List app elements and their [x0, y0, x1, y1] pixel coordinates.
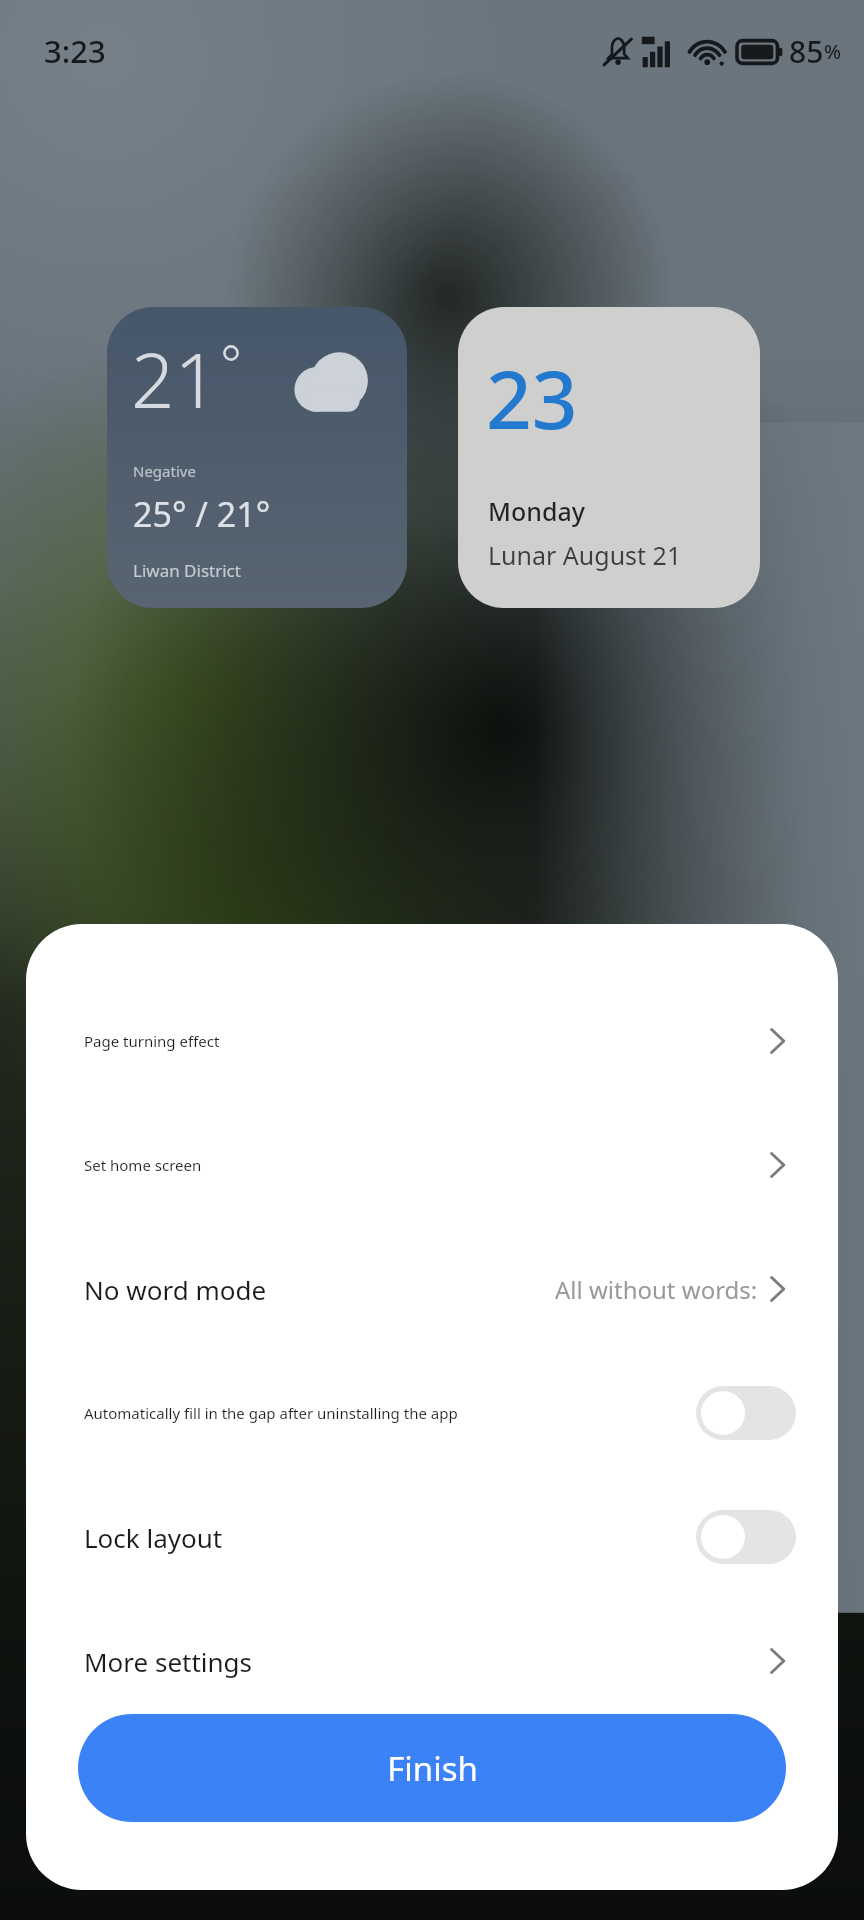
- button[interactable]: 23: [458, 307, 760, 608]
- staticText: 25° / 21°: [133, 491, 271, 537]
- staticText: 23: [486, 343, 578, 452]
- staticText: Liwan District: [133, 559, 241, 582]
- staticText: All without words:: [555, 1273, 758, 1306]
- staticText: 3:23: [44, 30, 106, 72]
- button[interactable]: More settings: [26, 1618, 838, 1704]
- button[interactable]: No word mode: [26, 1246, 838, 1332]
- staticText: Set home screen: [84, 1155, 202, 1175]
- staticText: Monday: [488, 494, 585, 528]
- staticText: 21: [131, 327, 218, 431]
- staticText: Page turning effect: [84, 1031, 220, 1051]
- staticText: More settings: [84, 1644, 253, 1679]
- staticText: %: [824, 38, 842, 65]
- staticText: Lunar August 21: [488, 538, 682, 572]
- staticText: 85: [789, 31, 824, 72]
- button[interactable]: Automatically fill in the gap after unin…: [26, 1370, 838, 1456]
- staticText: Lock layout: [84, 1520, 223, 1555]
- button[interactable]: Lock layout: [26, 1494, 838, 1580]
- button[interactable]: Toggle Lock layout: [696, 1510, 796, 1564]
- staticText: Finish: [387, 1746, 478, 1791]
- staticText: Negative: [133, 461, 196, 481]
- staticText: No word mode: [84, 1272, 267, 1307]
- button[interactable]: 21: [107, 307, 407, 608]
- button[interactable]: Toggle Automatically fill in the gap aft…: [696, 1386, 796, 1440]
- button[interactable]: Set home screen: [26, 1122, 838, 1208]
- staticText: Automatically fill in the gap after unin…: [84, 1403, 458, 1423]
- button[interactable]: Finish: [78, 1714, 786, 1822]
- button[interactable]: Page turning effect: [26, 998, 838, 1084]
